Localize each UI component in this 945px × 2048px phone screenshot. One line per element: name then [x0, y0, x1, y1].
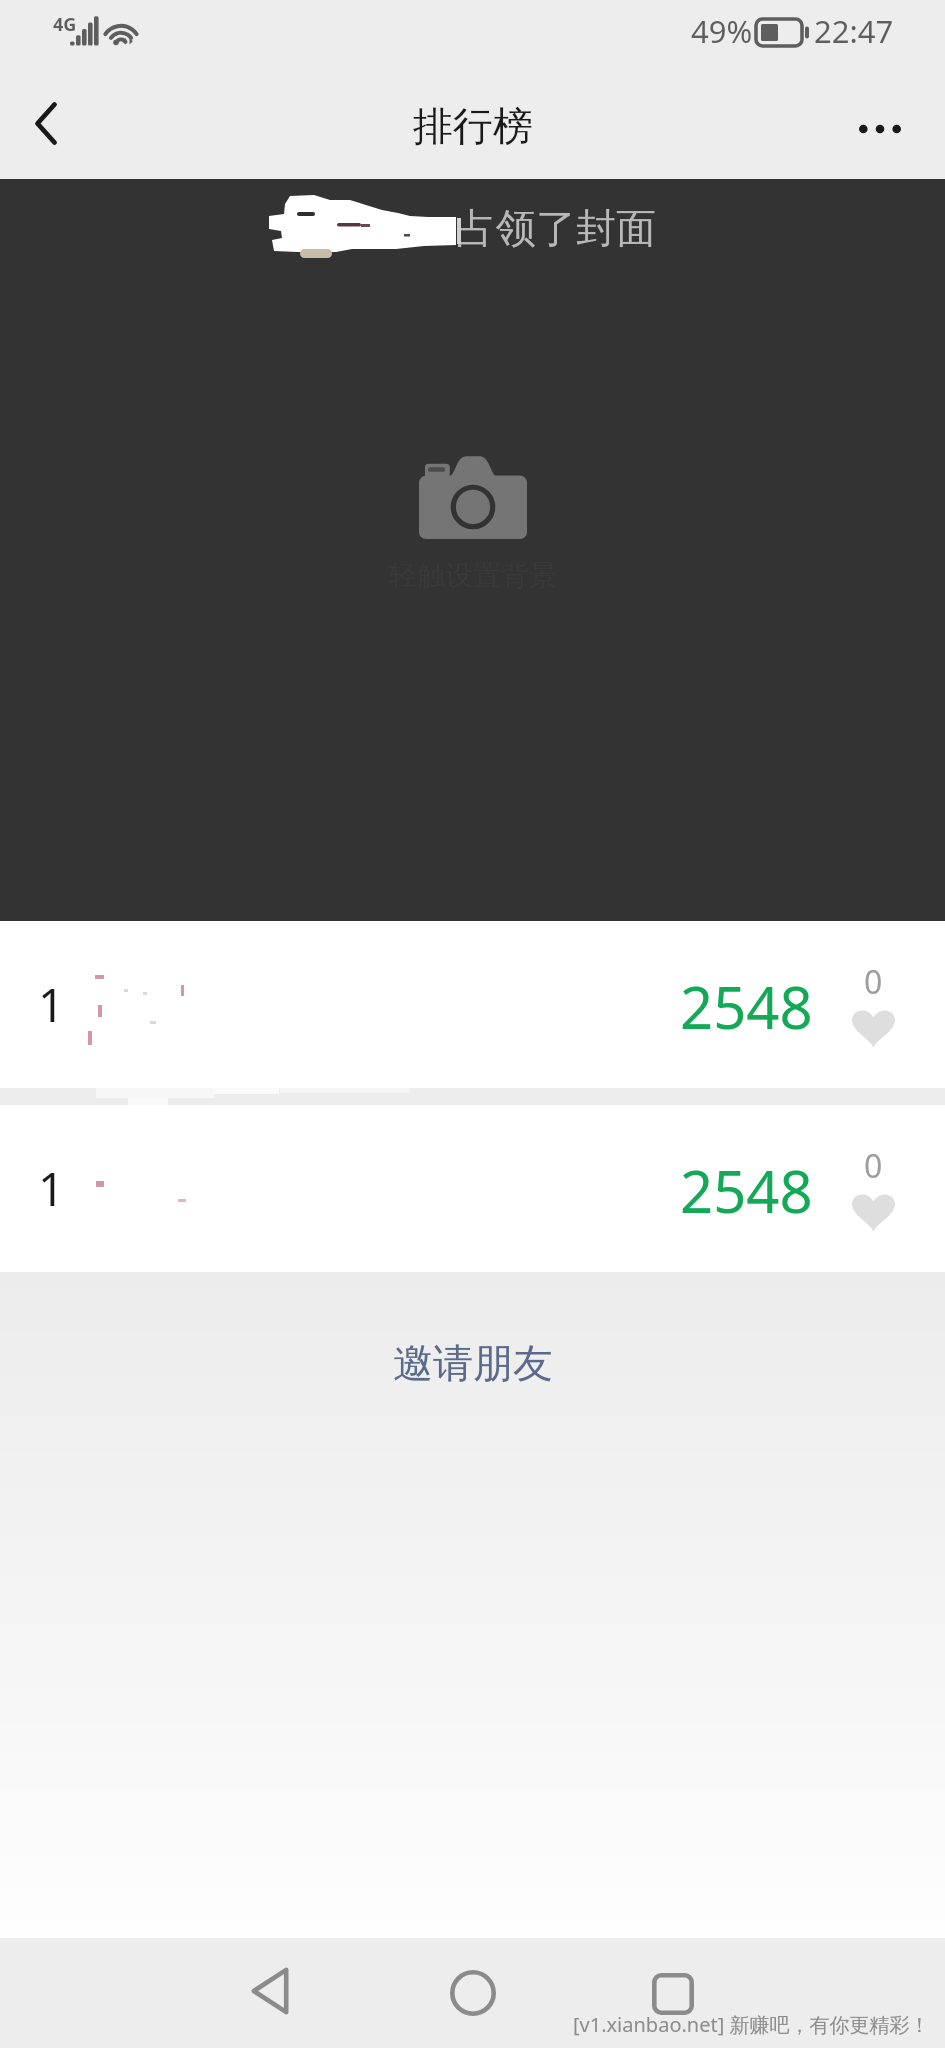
button[interactable]: Back [212, 1936, 328, 2046]
button[interactable]: Like [842, 1140, 905, 1236]
button[interactable]: Home [415, 1938, 531, 2048]
button[interactable]: 轻触设置背景 Set cover background [0, 179, 945, 921]
staticText: [v1.xianbao.net] 新赚吧，有你更精彩！ [573, 2011, 930, 2038]
staticText: 1 [38, 1157, 65, 1220]
staticText: 0 [864, 1144, 883, 1188]
button[interactable]: 1 [0, 921, 945, 1088]
staticText: 邀请朋友 [393, 1338, 553, 1388]
staticText: 49% [691, 10, 753, 52]
staticText: 4G [53, 12, 77, 37]
button[interactable]: Back [0, 78, 96, 179]
staticText: 占领了封面 [456, 203, 656, 253]
staticText: 22:47 [814, 10, 894, 52]
button[interactable]: Recent apps [615, 1939, 731, 2048]
staticText: 1 [38, 973, 65, 1036]
button[interactable]: Like [842, 956, 905, 1052]
staticText: 0 [864, 960, 883, 1004]
button[interactable]: 1 [0, 1105, 945, 1272]
staticText: 2548 [680, 967, 813, 1046]
button[interactable]: More options [819, 78, 945, 179]
staticText: 排行榜 [413, 101, 533, 151]
button[interactable]: 邀请朋友 [345, 1324, 601, 1402]
staticText: 2548 [680, 1151, 813, 1230]
